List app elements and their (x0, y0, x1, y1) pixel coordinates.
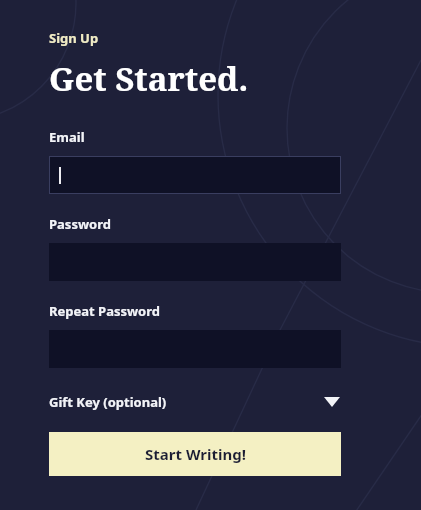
staticText: Get Started. (49, 56, 249, 101)
staticText: Sign Up (49, 29, 99, 47)
staticText: Email (49, 128, 85, 146)
staticText: Start Writing! (145, 444, 246, 464)
staticText: Password (49, 215, 111, 233)
other: Expand gift key field (323, 393, 341, 411)
staticText: Gift Key (optional) (49, 393, 167, 411)
button[interactable]: Start Writing! (49, 432, 341, 476)
staticText: Repeat Password (49, 302, 161, 320)
button[interactable]: Gift Key (optional) (49, 390, 341, 414)
button[interactable] (49, 156, 341, 194)
